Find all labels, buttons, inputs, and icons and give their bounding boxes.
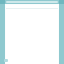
button[interactable]: Search bbox=[6, 1, 58, 3]
button[interactable] bbox=[6, 9, 58, 64]
button[interactable]: Add bbox=[4, 59, 8, 62]
